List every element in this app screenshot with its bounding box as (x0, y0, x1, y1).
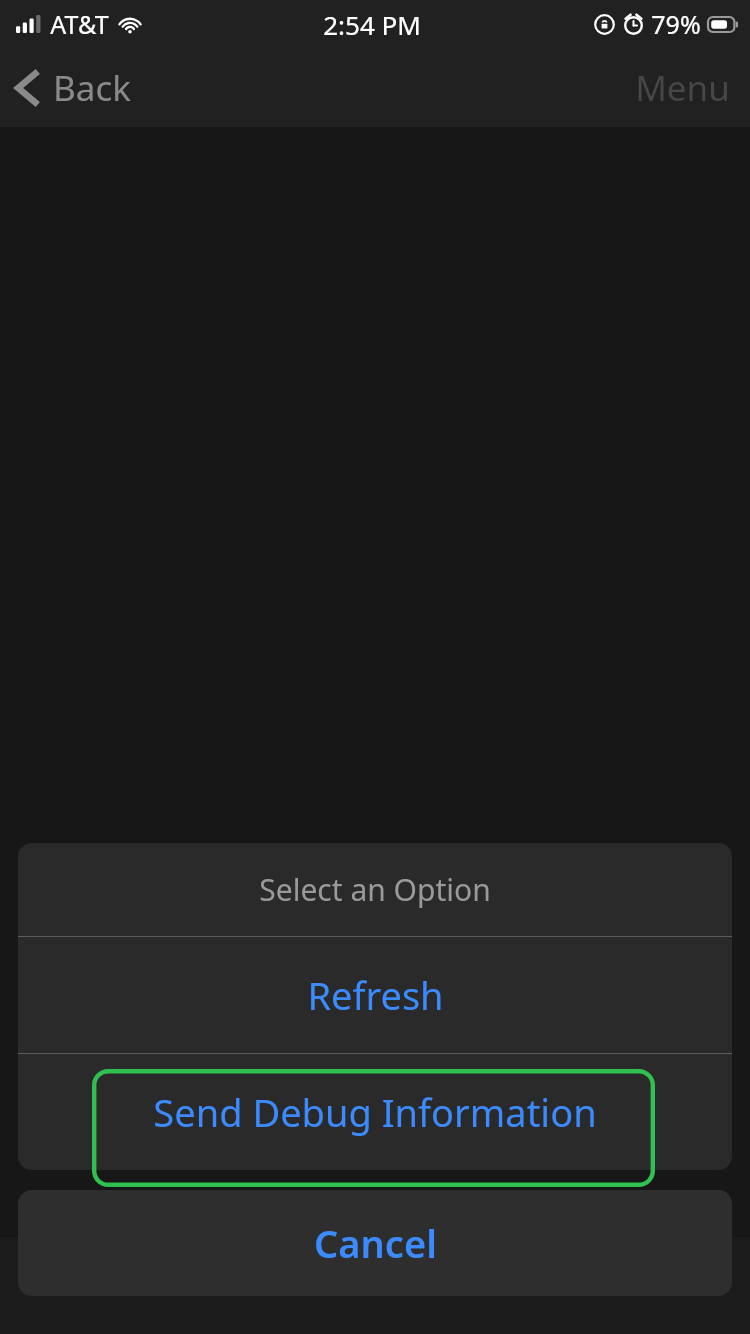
staticText: Refresh (307, 969, 444, 1021)
button[interactable]: Cancel (18, 1190, 732, 1296)
button[interactable]: Back (0, 56, 149, 120)
staticText: 2:54 PM (323, 7, 421, 42)
staticText: Back (53, 64, 131, 112)
staticText: Send Debug Information (153, 1086, 597, 1138)
button[interactable]: Send Debug Information (18, 1054, 732, 1170)
button[interactable]: Messages (500, 1237, 750, 1334)
staticText: Cancel (314, 1217, 437, 1269)
staticText: Menu (635, 64, 730, 112)
staticText: Files (351, 1239, 399, 1270)
button[interactable]: Files (250, 1237, 500, 1334)
button[interactable]: Refresh (18, 937, 732, 1053)
button[interactable]: Graphs (0, 1237, 250, 1334)
staticText: 79% (651, 7, 701, 41)
button[interactable]: Menu (615, 54, 750, 122)
staticText: AT&T (50, 7, 109, 41)
staticText: Select an Option (259, 869, 491, 910)
